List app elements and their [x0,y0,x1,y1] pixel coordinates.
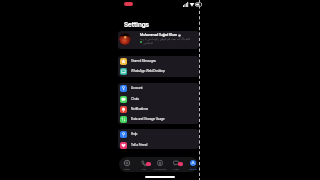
button[interactable]: Data and Storage Usage [118,114,199,124]
button[interactable]: Tell a Friend [118,140,199,150]
staticText: Data and Storage Usage [131,117,165,121]
staticText: Communities [152,168,168,171]
staticText: Status [119,168,135,171]
staticText: Tell a Friend [131,143,148,147]
button[interactable]: WhatsApp Web/Desktop [118,66,199,76]
staticText: العالمین [143,41,153,44]
staticText: Calls [136,168,152,171]
staticText: Help [131,132,138,136]
staticText: WhatsApp Web/Desktop [131,69,165,73]
staticText: Notifications [131,107,149,111]
staticText: Muhammad Sajjad Khan [140,33,177,37]
button[interactable]: Calls [136,157,152,172]
button[interactable]: Account [118,83,199,93]
staticText: Chats [131,97,140,101]
staticText: Settings [124,21,150,29]
button[interactable] [118,31,199,49]
button[interactable]: Help [118,129,199,139]
button[interactable]: Chats [168,157,184,172]
button[interactable]: Chats [118,94,199,104]
button[interactable]: Notifications [118,104,199,114]
staticText: اللہ پاک آپ سب کو خوش رکھے آمین یا رب [140,37,191,41]
staticText: Settings [185,168,201,171]
staticText: Chats [168,168,184,171]
button[interactable]: Settings [185,157,201,172]
button[interactable]: Communities [152,157,168,172]
staticText: Account [131,86,143,90]
button[interactable]: Starred Messages [118,56,199,66]
staticText: Starred Messages [131,59,156,63]
button[interactable]: Status [119,157,135,172]
